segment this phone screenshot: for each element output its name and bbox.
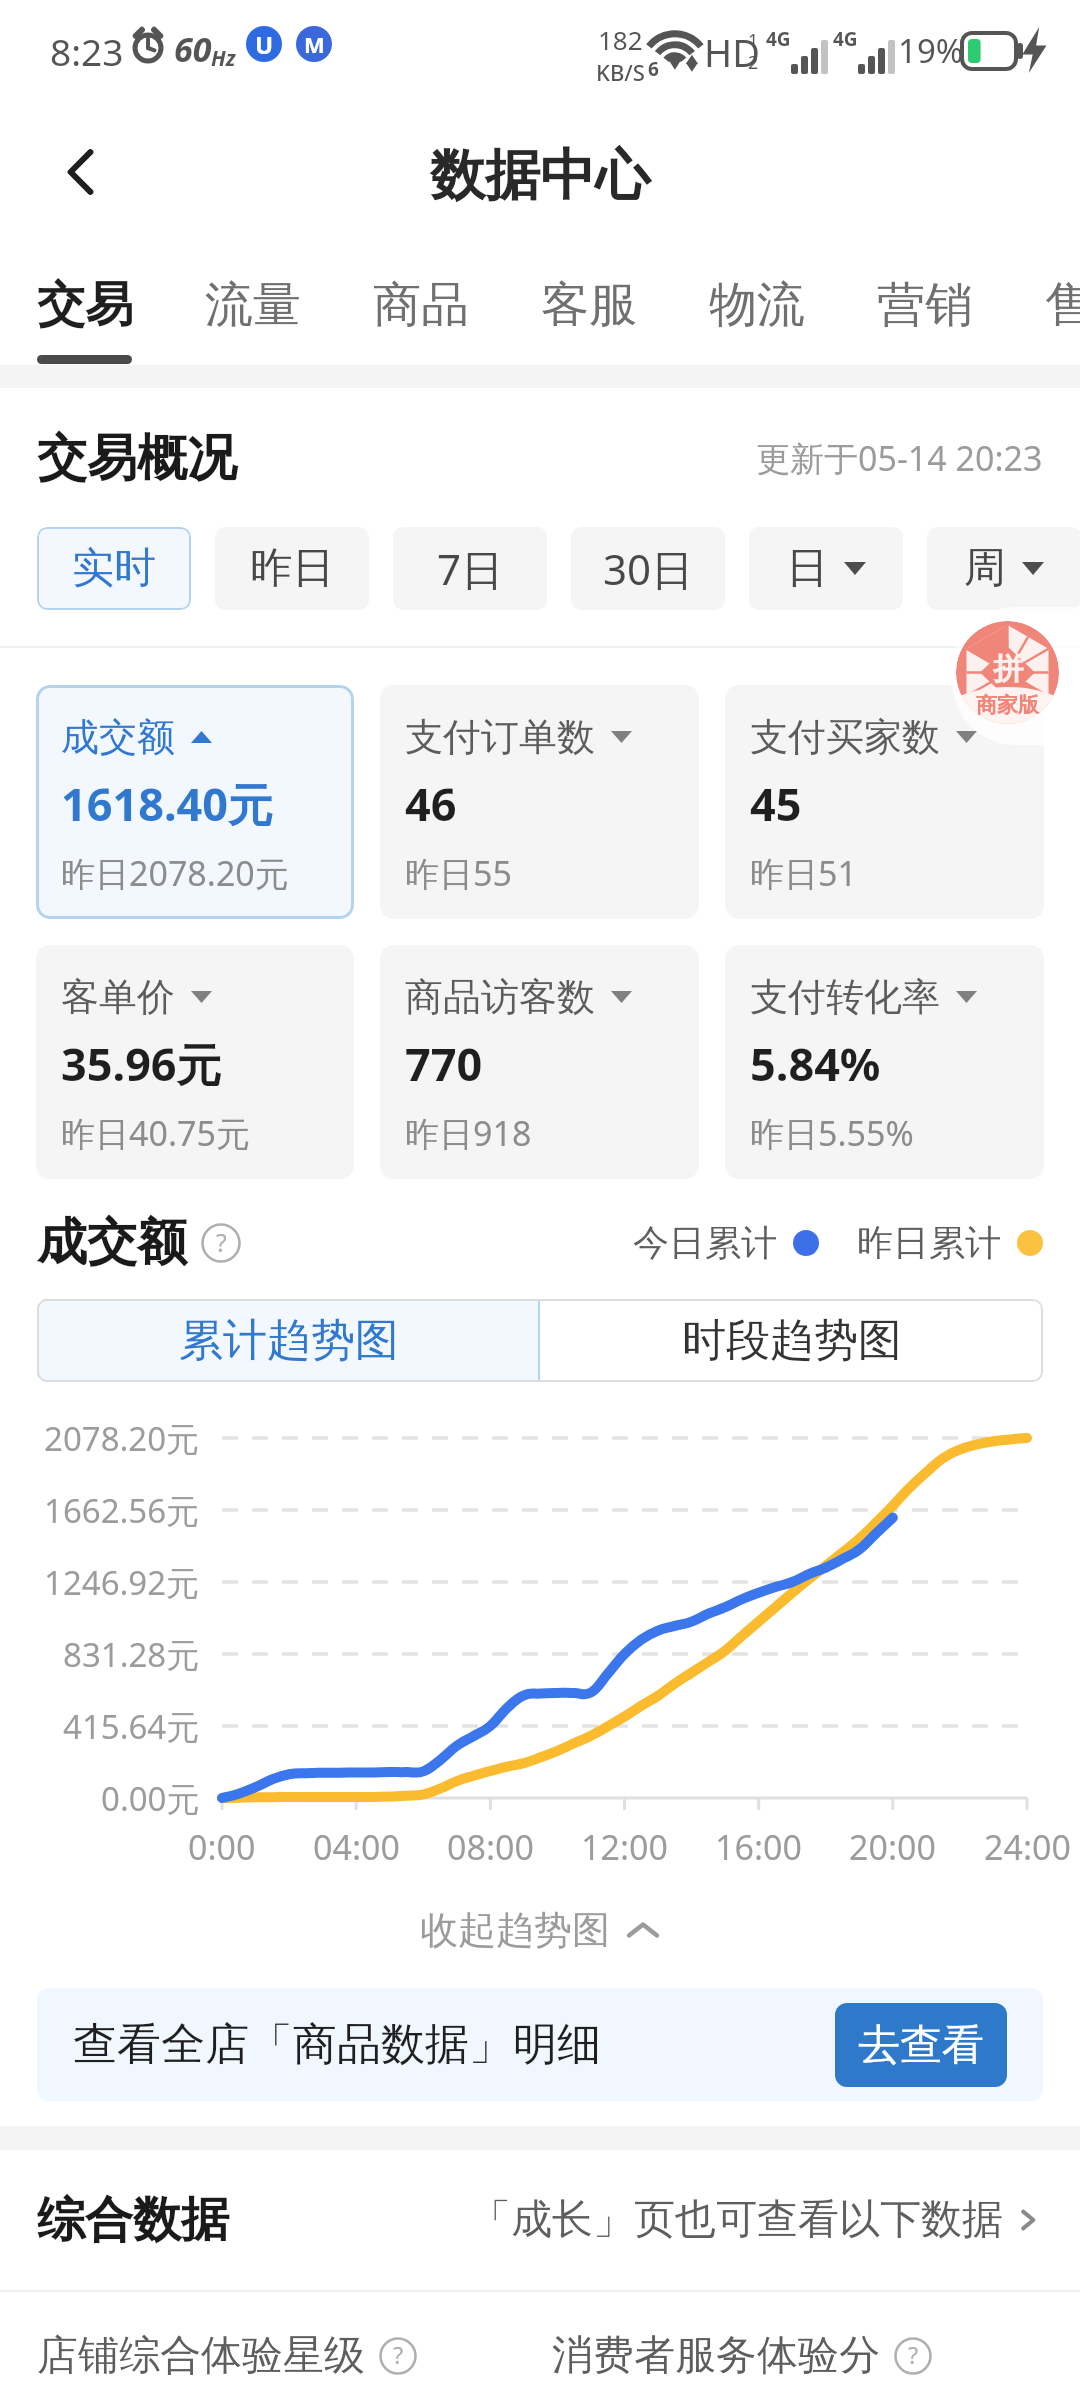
staticText: 1618.40元 [61,773,274,834]
button[interactable]: 成交额 [36,685,354,919]
button[interactable]: Back [34,125,128,219]
staticText: 时段趋势图 [682,1313,902,1368]
staticText: 昨日40.75元 [61,1110,250,1156]
button[interactable]: 实时 [37,527,191,610]
button[interactable]: 收起趋势图 [0,1895,1080,1965]
staticText: 6 [648,56,659,82]
staticText: 16:00 [715,1824,802,1870]
button[interactable]: 售 [1045,240,1080,365]
staticText: 昨日51 [750,850,857,896]
staticText: 支付订单数 [405,713,595,761]
button[interactable]: 商家版 [952,607,1080,745]
staticText: M [304,29,325,59]
button[interactable]: 店铺综合体验星级 [0,2330,540,2382]
staticText: 「成长」页也可查看以下数据 [470,2194,1003,2246]
staticText: 04:00 [313,1824,400,1870]
button[interactable]: 时段趋势图 [540,1299,1043,1382]
button[interactable]: 商品 [373,240,469,365]
staticText: 综合数据 [37,2190,229,2250]
button[interactable]: 支付买家数 [725,685,1044,919]
staticText: 昨日 [250,542,334,595]
staticText: 流量 [205,275,301,335]
staticText: 0:00 [188,1824,256,1870]
staticText: 8:23 [50,26,124,76]
button[interactable]: 流量 [205,240,301,365]
staticText: 周 [964,542,1006,595]
staticText: 去查看 [858,2019,984,2072]
staticText: 日 [786,542,828,595]
staticText: 客服 [541,275,637,335]
button[interactable]: 支付转化率 [725,945,1044,1179]
staticText: 1 [748,28,759,53]
button[interactable]: 去查看 [835,2003,1007,2087]
staticText: 实时 [72,542,156,595]
button[interactable]: 30日 [571,527,725,610]
staticText: 支付转化率 [750,973,940,1021]
staticText: 4G [833,26,858,52]
staticText: 5.84% [750,1033,881,1094]
staticText: 1662.56元 [44,1488,200,1533]
staticText: 08:00 [447,1824,534,1870]
staticText: 营销 [877,275,973,335]
staticText: 415.64元 [63,1704,200,1749]
staticText: 收起趋势图 [420,1906,610,1954]
staticText: 2 [748,50,759,75]
staticText: 7日 [437,540,504,597]
staticText: 店铺综合体验星级 [37,2330,365,2382]
staticText: 昨日918 [405,1110,532,1156]
staticText: 12:00 [581,1824,668,1870]
staticText: 商品访客数 [405,973,595,1021]
button[interactable]: 支付订单数 [380,685,699,919]
staticText: 今日累计 [633,1220,777,1265]
button[interactable]: 客单价 [36,945,354,1179]
staticText: ? [393,2339,404,2371]
staticText: U [255,28,274,61]
staticText: 成交额 [61,713,175,761]
button[interactable]: 日 [749,527,903,610]
button[interactable]: 周 [927,527,1080,610]
button[interactable]: 昨日 [215,527,369,610]
staticText: 售 [1045,275,1080,335]
staticText: 昨日5.55% [750,1110,914,1156]
staticText: 831.28元 [63,1632,200,1677]
staticText: 支付买家数 [750,713,940,761]
staticText: 30日 [603,540,694,597]
staticText: 20:00 [849,1824,936,1870]
staticText: 拼 [993,650,1023,688]
staticText: 商品 [373,275,469,335]
staticText: 交易概况 [37,427,237,490]
staticText: 交易 [37,275,133,335]
staticText: 累计趋势图 [179,1313,399,1368]
button[interactable]: 查看全店「商品数据」明细 [37,1988,1043,2101]
staticText: 24:00 [984,1824,1071,1870]
staticText: Hz [211,44,236,73]
staticText: 商家版 [976,692,1039,718]
button[interactable]: 物流 [709,240,805,365]
staticText: 昨日55 [405,850,512,896]
staticText: 46 [405,773,457,834]
staticText: 1246.92元 [44,1560,200,1605]
button[interactable]: 7日 [393,527,547,610]
staticText: 物流 [709,275,805,335]
staticText: 45 [750,773,802,834]
staticText: 消费者服务体验分 [552,2330,880,2382]
button[interactable]: 商品访客数 [380,945,699,1179]
staticText: 60 [174,26,212,72]
staticText: 19% [898,28,964,73]
staticText: 182 [598,22,643,57]
staticText: 35.96元 [61,1033,222,1094]
staticText: 770 [405,1033,483,1094]
button[interactable]: 消费者服务体验分 [540,2330,1080,2382]
staticText: 0.00元 [101,1776,200,1821]
button[interactable]: 综合数据 [0,2150,1080,2290]
staticText: 客单价 [61,973,175,1021]
staticText: HD [704,26,760,78]
button[interactable]: 客服 [541,240,637,365]
button[interactable]: 营销 [877,240,973,365]
staticText: 更新于05-14 20:23 [756,435,1043,481]
button[interactable]: 交易 [37,240,133,365]
staticText: 数据中心 [430,141,650,210]
button[interactable]: 累计趋势图 [37,1299,540,1382]
staticText: 查看全店「商品数据」明细 [73,2017,601,2072]
staticText: 成交额 [37,1211,187,1274]
